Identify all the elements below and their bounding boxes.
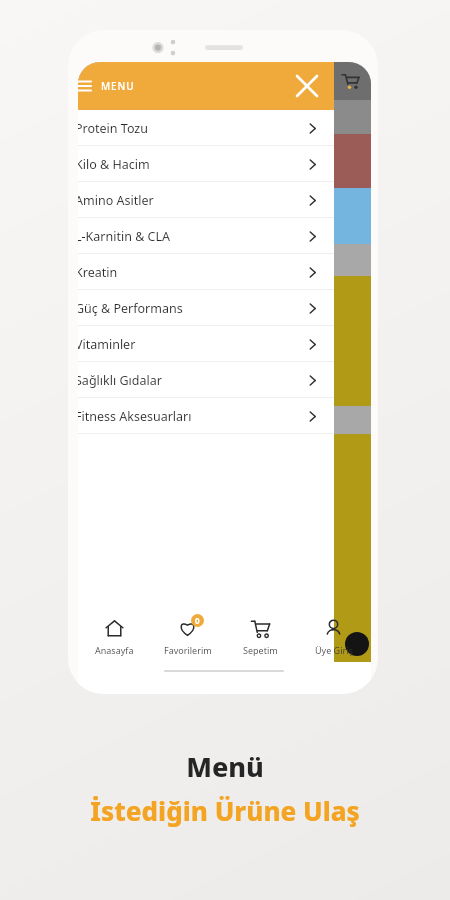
button[interactable]: Menu (78, 62, 334, 110)
button[interactable]: Vitaminler (78, 326, 334, 362)
staticText: İNDİRİM (78, 224, 136, 242)
staticText: Menü (186, 748, 264, 785)
staticText: 0 (195, 615, 200, 626)
staticText: Amino Asitler (78, 192, 154, 209)
button[interactable]: Üye Giriş (297, 614, 370, 661)
other: Menu (78, 78, 91, 94)
staticText: Kreatin (78, 264, 118, 281)
staticText: Güç & Performans (78, 300, 183, 317)
staticText: Üye Giriş (315, 644, 353, 656)
button[interactable]: Kreatin (78, 254, 334, 290)
button[interactable]: Close menu (292, 71, 322, 101)
button[interactable]: 0 (151, 614, 224, 661)
button[interactable]: Anasayfa (77, 614, 151, 661)
staticText: Kilo & Hacim (78, 156, 150, 173)
button[interactable]: Sağlıklı Gıdalar (78, 362, 334, 398)
staticText: Sağlıklı Gıdalar (78, 372, 162, 389)
staticText: Favorilerim (164, 644, 212, 656)
staticText: Protein Tozu (78, 120, 148, 137)
button[interactable]: Sepetim (224, 614, 297, 661)
staticText: İstediğin Ürüne Ulaş (90, 793, 360, 828)
staticText: L-Karnitin & CLA (78, 228, 170, 245)
staticText: Vitaminler (78, 336, 136, 353)
other: Cart (342, 73, 359, 90)
button[interactable]: Amino Asitler (78, 182, 334, 218)
button[interactable]: Fitness Aksesuarları (78, 398, 334, 434)
button[interactable]: L-Karnitin & CLA (78, 218, 334, 254)
staticText: Sepetim (243, 644, 278, 656)
staticText: Fitness Aksesuarları (78, 408, 192, 425)
button[interactable]: Protein Tozu (78, 110, 334, 146)
button[interactable]: Kilo & Hacim (78, 146, 334, 182)
staticText: Anasayfa (95, 644, 134, 656)
staticText: MENU (101, 79, 135, 93)
staticText: % 50 (78, 211, 106, 227)
button[interactable]: Güç & Performans (78, 290, 334, 326)
